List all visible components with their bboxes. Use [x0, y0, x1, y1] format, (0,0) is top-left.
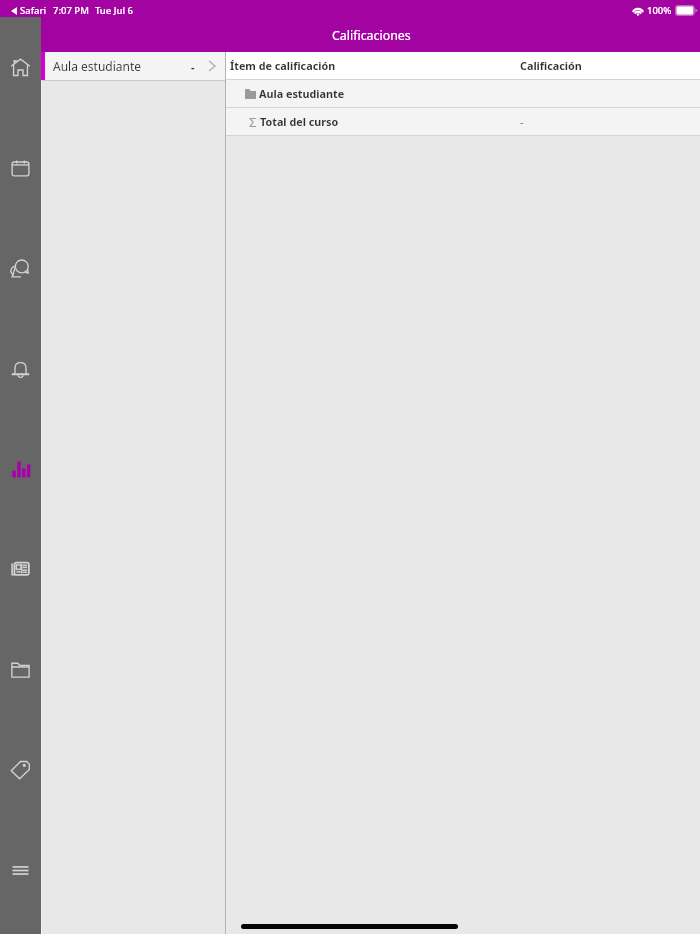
staticText: Calificación	[520, 58, 582, 73]
staticText: 100%	[647, 4, 672, 17]
button[interactable]: Tags	[0, 751, 41, 787]
button[interactable]: Files	[0, 651, 41, 687]
button[interactable]: Calendar	[0, 150, 41, 186]
staticText: 7:07 PM	[53, 4, 89, 17]
staticText: Calificaciones	[332, 27, 411, 44]
staticText: Safari	[20, 4, 47, 17]
staticText: Tue Jul 6	[95, 4, 133, 17]
staticText: Aula estudiante	[259, 86, 345, 101]
button[interactable]: Σ	[226, 108, 700, 135]
staticText: Σ	[249, 113, 257, 131]
staticText: Ítem de calificación	[230, 58, 336, 73]
button[interactable]: Aula estudiante	[41, 52, 225, 80]
button[interactable]: Aula estudiante	[226, 80, 700, 107]
button[interactable]: Notifications	[0, 350, 41, 386]
staticText: Aula estudiante	[53, 58, 142, 74]
button[interactable]: Messages	[0, 250, 41, 286]
staticText: -	[520, 114, 524, 129]
button[interactable]: Menu	[0, 852, 41, 888]
button[interactable]: Home	[0, 49, 41, 85]
button[interactable]: Grades	[0, 451, 41, 487]
staticText: Total del curso	[260, 114, 339, 129]
staticText: -	[191, 59, 195, 74]
button[interactable]: News	[0, 550, 41, 586]
